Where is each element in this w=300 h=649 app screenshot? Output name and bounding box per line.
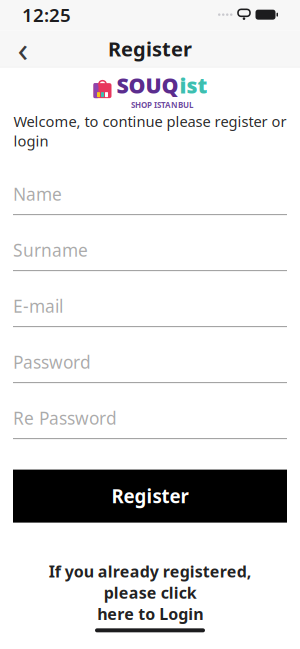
staticText: SHOP ISTANBUL <box>131 99 193 110</box>
staticText: Surname <box>13 239 88 262</box>
staticText: Register <box>108 35 192 62</box>
button[interactable]: Re Password <box>13 391 287 447</box>
staticText: E-mail <box>13 295 63 318</box>
button[interactable]: Register <box>13 470 287 523</box>
staticText: Re Password <box>13 407 117 430</box>
staticText: Password <box>13 351 91 374</box>
button[interactable]: Back <box>6 31 40 67</box>
button[interactable]: If you already registered, please click … <box>33 557 267 628</box>
staticText: Register <box>111 484 188 508</box>
button[interactable]: Name <box>13 167 287 223</box>
staticText: ist <box>179 71 207 99</box>
staticText: SOUQ <box>116 71 178 99</box>
staticText: If you already registered, please click … <box>48 561 251 624</box>
staticText: Name <box>13 183 62 206</box>
button[interactable]: Password <box>13 335 287 391</box>
button[interactable]: Surname <box>13 223 287 279</box>
button[interactable]: E-mail <box>13 279 287 335</box>
staticText: 12:25 <box>22 2 71 27</box>
staticText: ‹ <box>17 26 28 72</box>
staticText: Welcome, to continue please register or … <box>13 112 286 151</box>
